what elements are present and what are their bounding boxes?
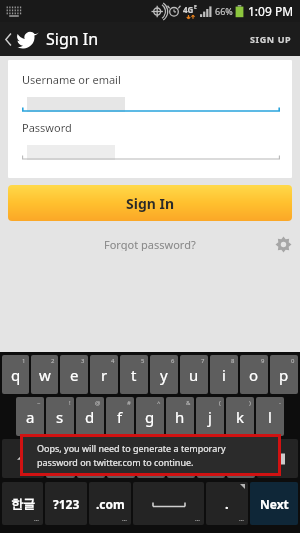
button[interactable]: x	[77, 439, 105, 478]
button[interactable]: p	[270, 355, 298, 394]
button[interactable]	[22, 142, 280, 160]
staticText: ...	[122, 515, 128, 523]
button[interactable]: Sign In	[8, 185, 292, 221]
button[interactable]: j	[196, 397, 224, 436]
staticText: ...	[239, 515, 245, 523]
button[interactable]: t	[120, 355, 148, 394]
button[interactable]: Forgot password?	[98, 231, 202, 257]
staticText: (	[219, 399, 221, 407]
staticText: )	[249, 399, 251, 407]
button[interactable]: f	[106, 397, 134, 436]
button[interactable]: SIGN UP	[242, 25, 300, 53]
staticText: ?123	[53, 496, 80, 512]
button[interactable]: y	[150, 355, 178, 394]
staticText: Username or email	[22, 72, 121, 87]
button[interactable]: Settings	[275, 236, 300, 253]
button[interactable]: a	[16, 397, 44, 436]
button[interactable]: v	[137, 439, 165, 478]
button[interactable]: 한글	[2, 482, 43, 525]
staticText: s	[56, 407, 64, 427]
button[interactable]: c	[107, 439, 135, 478]
staticText: v	[147, 449, 155, 469]
button[interactable]: n	[197, 439, 225, 478]
staticText: ,	[190, 441, 192, 449]
staticText: !	[69, 399, 71, 407]
button[interactable]: l	[256, 397, 284, 436]
staticText: ?	[219, 441, 222, 449]
staticText: u	[189, 365, 199, 385]
staticText: ;	[160, 441, 162, 449]
staticText: b	[176, 449, 186, 469]
staticText: Oops, you will need to generate a tempor…	[37, 442, 226, 454]
staticText: 6	[171, 357, 175, 365]
staticText: j	[208, 407, 212, 427]
staticText: #	[127, 399, 131, 407]
button[interactable]: Space	[133, 482, 204, 525]
staticText: 4	[111, 357, 115, 365]
staticText: 1:09 PM	[248, 3, 294, 19]
staticText: l	[268, 407, 272, 427]
button[interactable]: Sign In	[0, 24, 105, 54]
staticText: x	[87, 449, 95, 469]
button[interactable]: m	[227, 439, 255, 478]
button[interactable]: e	[60, 355, 88, 394]
staticText: d	[85, 407, 95, 427]
staticText: 4G	[183, 4, 194, 15]
staticText: .	[225, 495, 229, 513]
staticText: ~	[37, 399, 41, 407]
staticText: 1	[22, 357, 26, 365]
staticText: i	[222, 365, 226, 385]
staticText: :	[130, 441, 132, 449]
staticText: n	[206, 449, 216, 469]
staticText: 9	[261, 357, 265, 365]
button[interactable]: w	[31, 355, 58, 394]
button[interactable]: o	[240, 355, 268, 394]
staticText: w	[39, 365, 51, 385]
staticText: 7	[201, 357, 205, 365]
button[interactable]: k	[226, 397, 254, 436]
button[interactable]: z	[46, 439, 75, 478]
staticText: @	[95, 399, 101, 407]
staticText: a	[26, 407, 35, 427]
staticText: 한글	[11, 496, 35, 511]
staticText: c	[117, 449, 125, 469]
staticText: &	[186, 399, 191, 407]
staticText: 2	[51, 357, 55, 365]
staticText: y	[160, 365, 168, 385]
staticText: h	[175, 407, 185, 427]
staticText: 5	[141, 357, 145, 365]
button[interactable]: .com	[89, 482, 131, 525]
staticText: q	[11, 365, 21, 385]
button[interactable]: s	[46, 397, 74, 436]
button[interactable]: b	[167, 439, 195, 478]
button[interactable]: i	[210, 355, 238, 394]
button[interactable]: Next	[250, 482, 298, 525]
button[interactable]: .	[206, 482, 248, 525]
staticText: z	[57, 449, 65, 469]
staticText: Password	[22, 120, 72, 135]
button[interactable]: g	[136, 397, 164, 436]
staticText: f	[117, 407, 123, 427]
button[interactable]	[22, 94, 280, 112]
button[interactable]: Backspace	[257, 439, 298, 478]
button[interactable]: Shift	[2, 439, 44, 478]
button[interactable]: r	[90, 355, 118, 394]
button[interactable]: u	[180, 355, 208, 394]
staticText: E	[194, 4, 197, 11]
staticText: 0	[291, 357, 295, 365]
staticText: Sign In	[46, 28, 99, 50]
staticText: o	[249, 365, 259, 385]
staticText: 8	[231, 357, 235, 365]
staticText: k	[236, 407, 245, 427]
staticText: Sign In	[126, 194, 175, 213]
staticText: '	[70, 441, 72, 449]
button[interactable]: d	[76, 397, 104, 436]
button[interactable]: ?123	[45, 482, 87, 525]
button[interactable]: q	[2, 355, 29, 394]
staticText: SIGN UP	[250, 33, 292, 45]
button[interactable]: h	[166, 397, 194, 436]
staticText: p	[279, 365, 289, 385]
staticText: ...	[195, 515, 201, 523]
